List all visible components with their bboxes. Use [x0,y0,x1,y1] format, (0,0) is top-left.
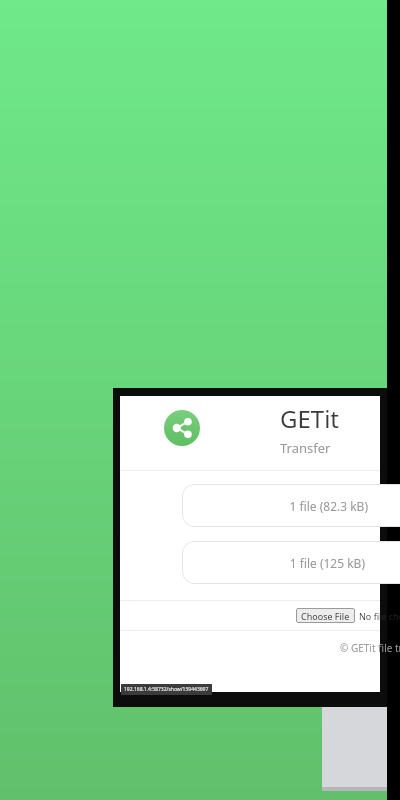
staticText: 1 file (125 kB) [289,555,365,571]
button[interactable]: Choose File [296,608,355,623]
staticText: © GETit file transfer [340,641,400,655]
staticText: GETit [280,402,340,435]
staticText: 192.168.1.4:58732/show/159443697 [124,686,209,693]
button[interactable]: GETit share [164,410,200,446]
staticText: No file chosen [359,610,400,622]
staticText: 1 file (82.3 kB) [289,498,368,514]
staticText: Transfer [280,439,331,457]
button[interactable]: 1 file (82.3 kB) [182,484,400,527]
button[interactable]: 1 file (125 kB) [182,541,400,584]
staticText: Choose File [301,610,350,622]
